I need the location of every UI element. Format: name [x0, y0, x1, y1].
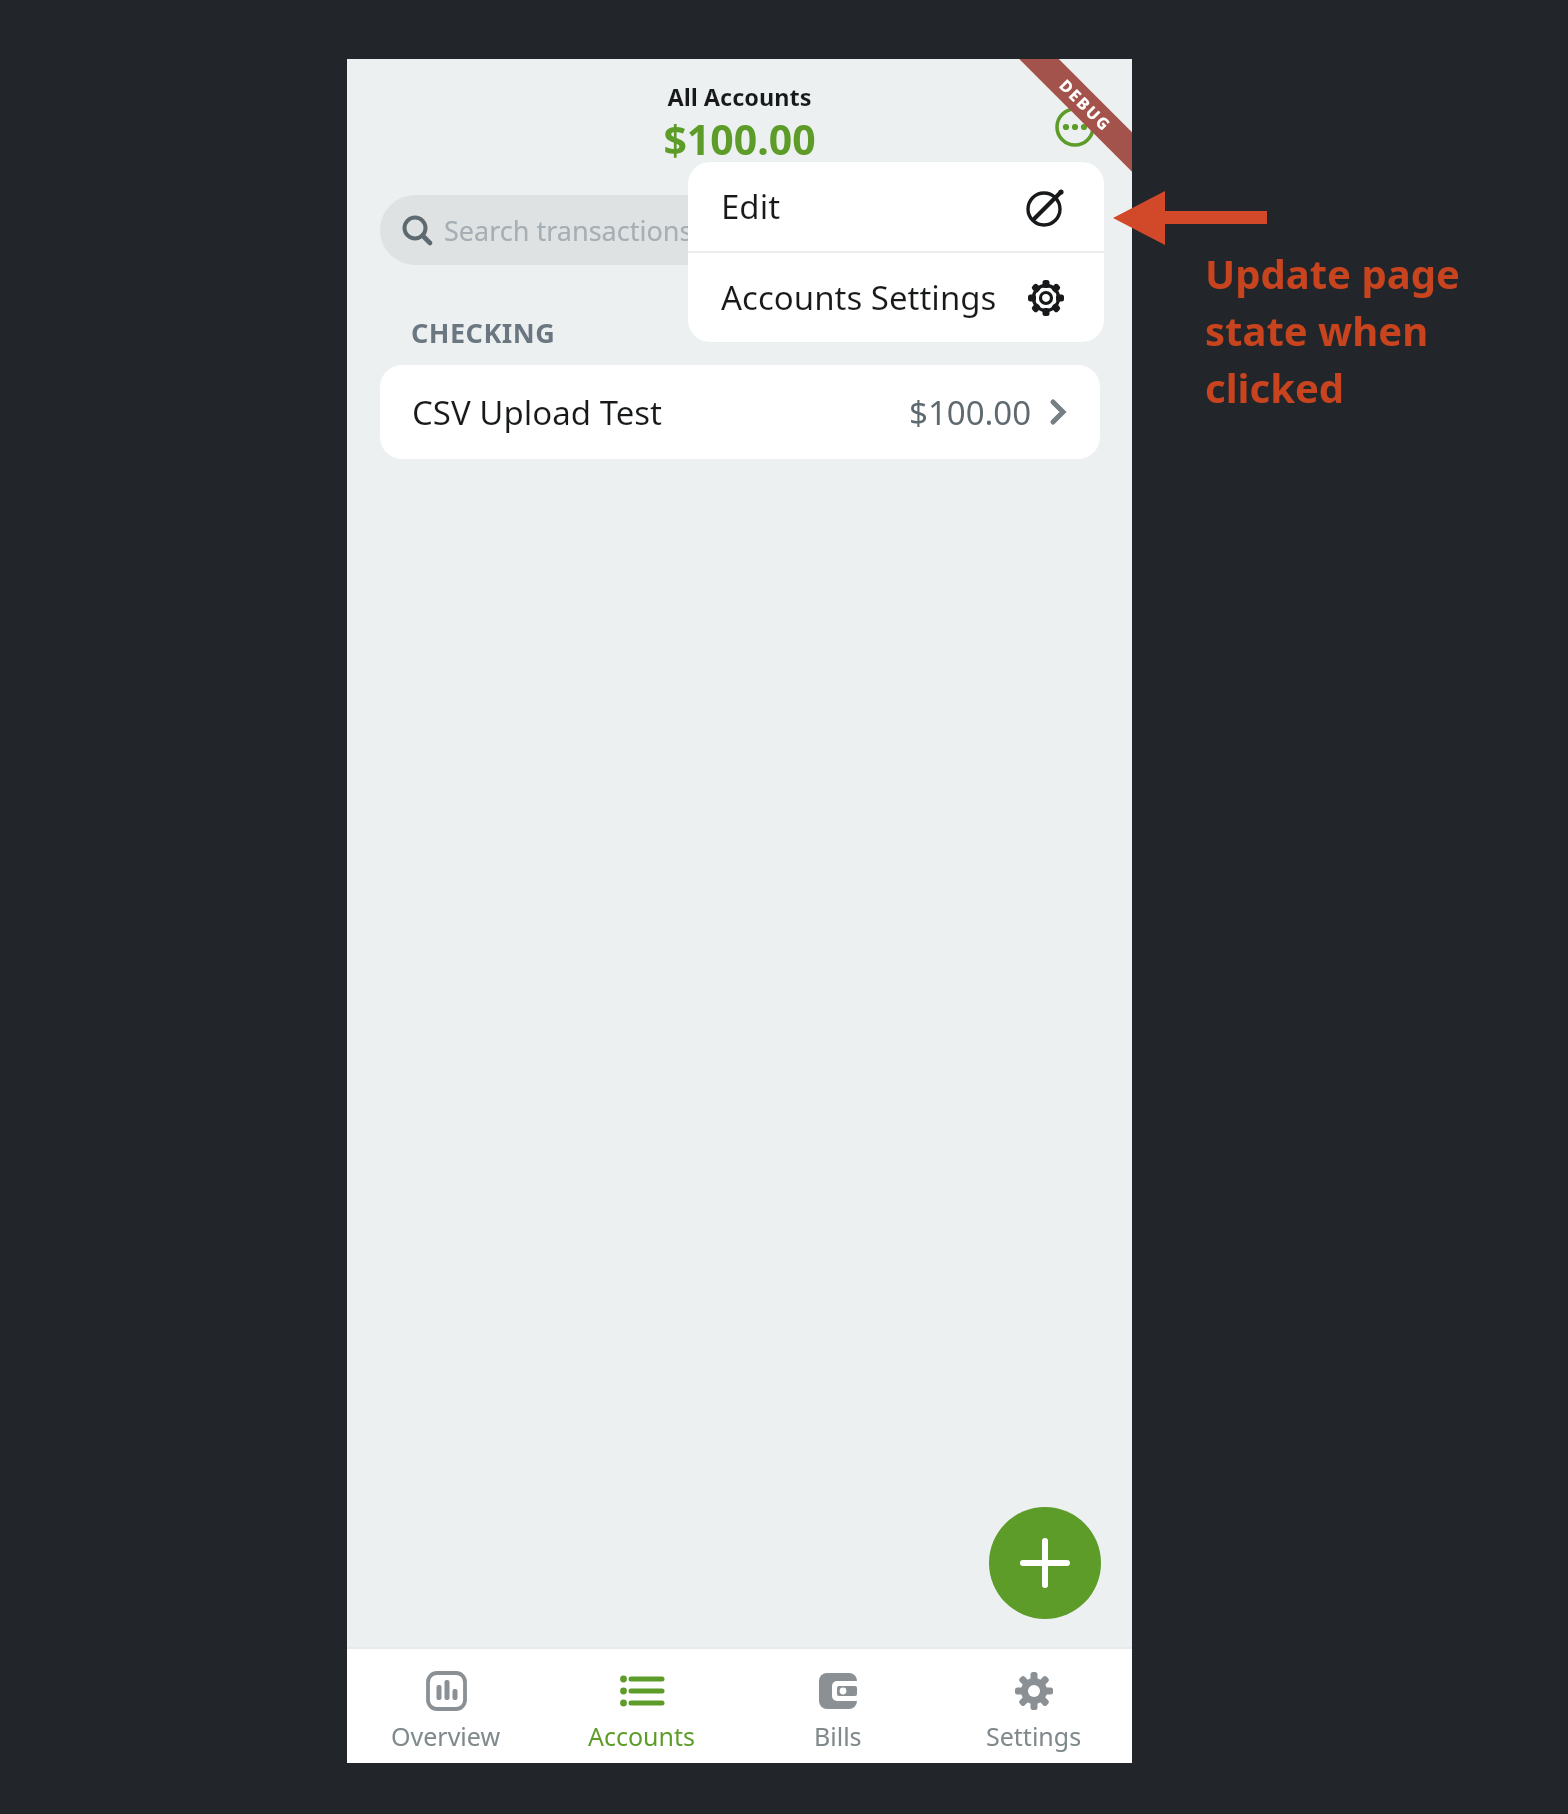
staticText: $100.00	[909, 390, 1032, 435]
button[interactable]	[989, 1507, 1101, 1619]
button[interactable]: Overview	[347, 1649, 544, 1763]
staticText: All Accounts	[347, 81, 1132, 113]
staticText: state when	[1205, 303, 1429, 357]
staticText: DEBUG	[1055, 75, 1116, 136]
staticText: Update page	[1205, 246, 1460, 300]
staticText: $100.00	[347, 111, 1132, 167]
button[interactable]: Edit	[688, 162, 1104, 251]
button[interactable]: Settings	[936, 1649, 1132, 1763]
button[interactable]: Accounts Settings	[688, 253, 1104, 342]
staticText: Accounts	[588, 1719, 696, 1753]
button[interactable]	[1055, 107, 1095, 147]
staticText: CHECKING	[411, 314, 556, 351]
staticText: CSV Upload Test	[412, 390, 663, 435]
staticText: Settings	[986, 1719, 1082, 1753]
staticText: Overview	[391, 1719, 501, 1753]
staticText: Bills	[814, 1719, 862, 1753]
button[interactable]: Bills	[740, 1649, 936, 1763]
staticText: Search transactions...	[444, 212, 715, 249]
button[interactable]: Search transactions...	[380, 195, 1100, 265]
staticText: Accounts Settings	[721, 275, 997, 320]
staticText: clicked	[1205, 360, 1345, 414]
staticText: Edit	[721, 184, 781, 229]
button[interactable]: Accounts	[544, 1649, 740, 1763]
button[interactable]: CSV Upload Test	[380, 365, 1100, 459]
